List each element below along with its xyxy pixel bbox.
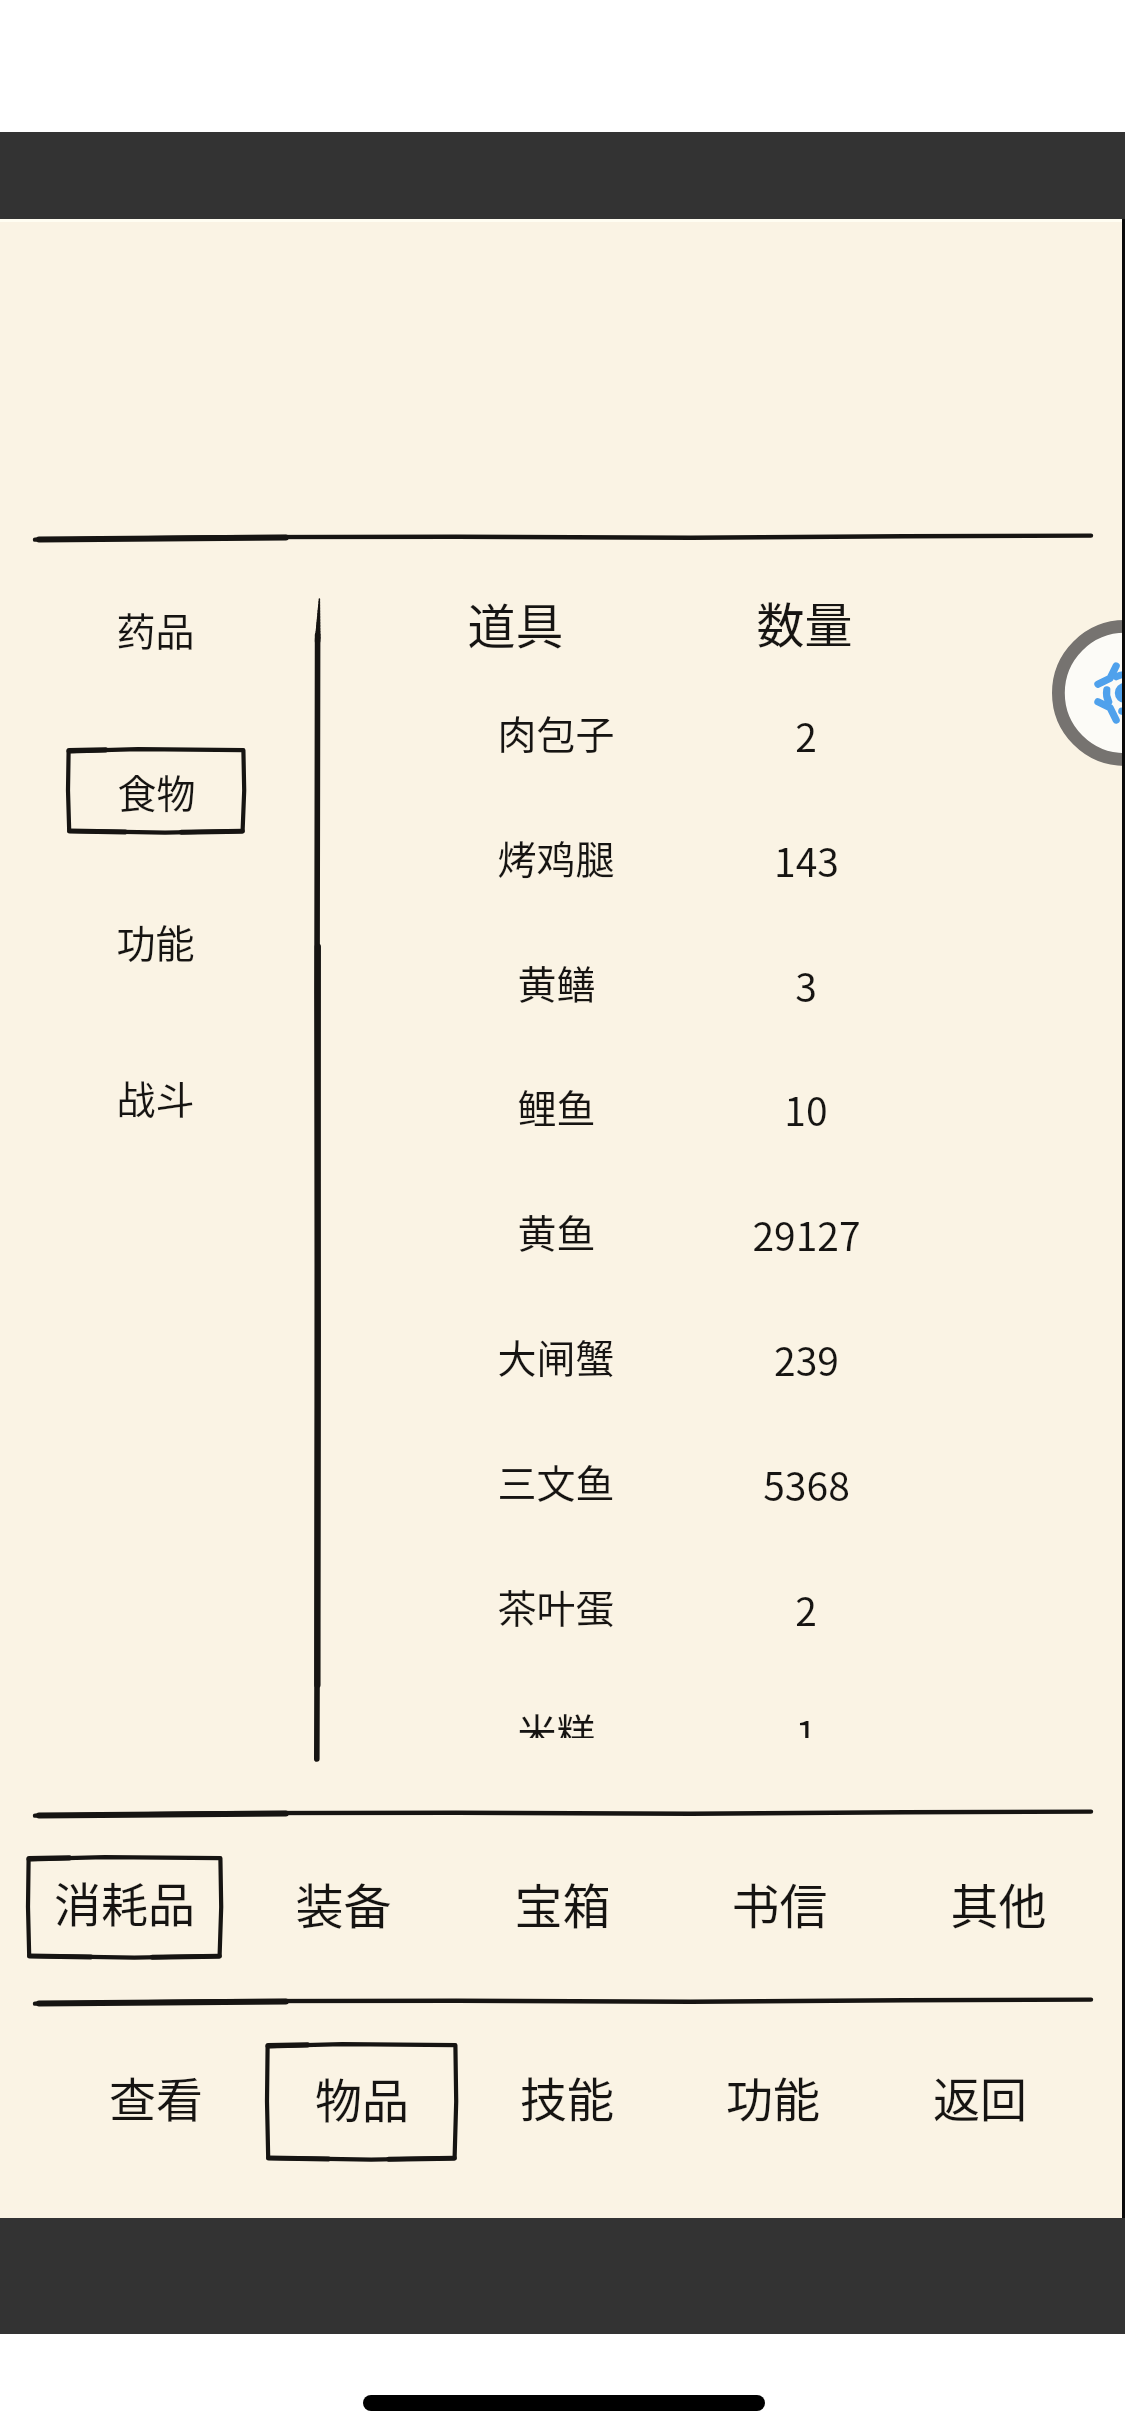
staticText: 数量: [756, 587, 853, 657]
button[interactable]: 查看: [0, 2044, 316, 2148]
button[interactable]: Settings: [1052, 620, 1125, 766]
staticText: 米糕: [517, 1702, 596, 1738]
staticText: 黄鳝: [517, 954, 596, 1010]
button[interactable]: 道具: [355, 571, 675, 675]
staticText: 茶叶蛋: [497, 1578, 615, 1634]
staticText: 143: [774, 832, 839, 888]
button[interactable]: 其他: [838, 1851, 1125, 1955]
button[interactable]: 2: [646, 1557, 966, 1661]
button[interactable]: 功能: [613, 2044, 933, 2148]
button[interactable]: 2: [646, 683, 966, 787]
staticText: 查看: [109, 2062, 203, 2130]
button[interactable]: 药品: [0, 577, 315, 681]
button[interactable]: 书信: [619, 1851, 939, 1955]
staticText: 返回: [933, 2062, 1027, 2130]
button[interactable]: 技能: [407, 2044, 727, 2148]
button[interactable]: 143: [646, 808, 966, 912]
button[interactable]: 返回: [820, 2044, 1125, 2148]
staticText: 功能: [726, 2062, 820, 2130]
button[interactable]: 三文鱼: [396, 1429, 716, 1533]
staticText: 技能: [520, 2062, 614, 2130]
button[interactable]: 功能: [0, 889, 315, 993]
staticText: 书信: [731, 1868, 828, 1938]
button[interactable]: 239: [646, 1307, 966, 1411]
button[interactable]: 物品: [265, 2042, 458, 2161]
staticText: 消耗品: [54, 1867, 195, 1935]
button[interactable]: 1: [646, 1681, 966, 1738]
staticText: 10: [784, 1081, 828, 1137]
staticText: 宝箱: [514, 1868, 611, 1938]
staticText: 5368: [763, 1456, 850, 1512]
staticText: 2: [795, 707, 817, 763]
staticText: 三文鱼: [497, 1453, 615, 1509]
button[interactable]: 装备: [183, 1851, 503, 1955]
staticText: 29127: [752, 1206, 861, 1262]
button[interactable]: 食物: [66, 747, 246, 834]
button[interactable]: 5368: [646, 1432, 966, 1536]
button[interactable]: 战斗: [0, 1045, 315, 1149]
button[interactable]: 鲤鱼: [396, 1054, 716, 1158]
button[interactable]: 米糕: [396, 1678, 716, 1738]
staticText: 物品: [315, 2063, 409, 2131]
staticText: 1: [795, 1705, 817, 1738]
button[interactable]: 黄鱼: [396, 1179, 716, 1283]
button[interactable]: 茶叶蛋: [396, 1554, 716, 1658]
button[interactable]: 肉包子: [396, 680, 716, 784]
staticText: 鲤鱼: [517, 1078, 596, 1134]
staticText: 大闸蟹: [497, 1328, 615, 1384]
staticText: 药品: [116, 601, 195, 657]
staticText: 肉包子: [497, 704, 615, 760]
button[interactable]: 29127: [646, 1182, 966, 1286]
staticText: 其他: [950, 1868, 1047, 1938]
staticText: 功能: [116, 913, 195, 969]
button[interactable]: 消耗品: [26, 1855, 223, 1959]
staticText: 装备: [295, 1868, 392, 1938]
staticText: 3: [795, 957, 817, 1013]
button[interactable]: 10: [646, 1057, 966, 1161]
staticText: 食物: [117, 763, 196, 819]
button[interactable]: 烤鸡腿: [396, 805, 716, 909]
button[interactable]: 数量: [644, 570, 964, 674]
staticText: 2: [795, 1581, 817, 1637]
staticText: 道具: [467, 588, 564, 658]
staticText: 战斗: [116, 1069, 195, 1125]
button[interactable]: 黄鳝: [396, 930, 716, 1034]
staticText: 黄鱼: [517, 1203, 596, 1259]
staticText: 烤鸡腿: [497, 829, 615, 885]
button[interactable]: 3: [646, 933, 966, 1037]
button[interactable]: 大闸蟹: [396, 1304, 716, 1408]
staticText: 239: [774, 1331, 839, 1387]
button[interactable]: 宝箱: [402, 1851, 722, 1955]
